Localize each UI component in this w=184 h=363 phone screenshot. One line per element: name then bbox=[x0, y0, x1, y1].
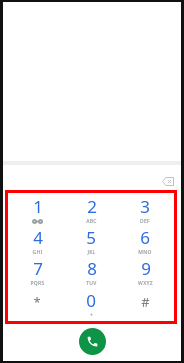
button[interactable]: 0 bbox=[64, 288, 118, 320]
button[interactable]: Call bbox=[79, 328, 106, 355]
button[interactable]: 9 bbox=[118, 256, 172, 288]
staticText: 2 bbox=[87, 195, 97, 218]
button[interactable]: 3 bbox=[118, 194, 172, 225]
button[interactable]: 4 bbox=[10, 225, 64, 256]
button[interactable]: 6 bbox=[118, 225, 172, 256]
staticText: DEF bbox=[140, 218, 150, 225]
staticText: 3 bbox=[140, 195, 150, 218]
button[interactable]: 1 bbox=[10, 194, 64, 225]
staticText: 0 bbox=[86, 289, 96, 312]
button[interactable]: Backspace bbox=[159, 172, 177, 190]
staticText: TUV bbox=[86, 280, 97, 287]
staticText: 7 bbox=[33, 257, 43, 280]
button[interactable]: * bbox=[10, 288, 64, 320]
staticText: * bbox=[33, 293, 41, 311]
staticText: 6 bbox=[140, 226, 150, 249]
button[interactable]: 5 bbox=[64, 225, 118, 256]
button[interactable]: 8 bbox=[64, 256, 118, 288]
staticText: 8 bbox=[87, 257, 97, 280]
staticText: GHI bbox=[32, 249, 43, 256]
staticText: 9 bbox=[141, 257, 151, 280]
staticText: 5 bbox=[86, 226, 96, 249]
button[interactable]: # bbox=[118, 288, 172, 320]
staticText: PQRS bbox=[30, 280, 45, 287]
staticText: ABC bbox=[86, 218, 97, 225]
staticText: 4 bbox=[33, 226, 43, 249]
staticText: # bbox=[141, 293, 150, 311]
staticText: MNO bbox=[138, 249, 152, 256]
staticText: JKL bbox=[87, 249, 96, 256]
button[interactable]: 2 bbox=[64, 194, 118, 225]
staticText: + bbox=[90, 312, 93, 319]
staticText: 1 bbox=[33, 195, 43, 218]
button[interactable]: 7 bbox=[10, 256, 64, 288]
staticText: WXYZ bbox=[138, 280, 153, 287]
